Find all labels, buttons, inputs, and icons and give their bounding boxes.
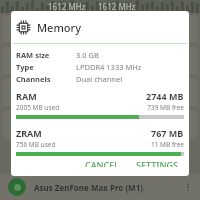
button[interactable] <box>3 111 197 139</box>
staticText: LPDDR4 1333 MHz <box>76 62 142 72</box>
staticText: 1612 MHz <box>98 1 136 12</box>
staticText: Dual channel <box>76 74 123 84</box>
staticText: Asus ZenFone Max Pro (M1) <box>34 182 143 193</box>
button[interactable]: Asus ZenFone Max Pro (M1) <box>0 174 200 200</box>
staticText: 3.0 GB <box>76 50 99 60</box>
staticText: CANCEL <box>85 159 120 167</box>
staticText: 739 MB free <box>147 103 184 112</box>
staticText: SETTINGS <box>136 159 178 167</box>
button[interactable] <box>3 15 197 43</box>
staticText: 11 MB free <box>150 140 184 149</box>
staticText: Memory <box>37 20 82 35</box>
staticText: RAM size <box>16 50 50 60</box>
staticText: 1612 MHz <box>48 1 86 12</box>
button[interactable]: More options <box>180 179 196 195</box>
staticText: Type <box>16 62 34 72</box>
staticText: 2744 MB <box>146 90 184 102</box>
staticText: ZRAM <box>16 127 151 139</box>
staticText: RAM <box>16 90 146 102</box>
button[interactable]: SETTINGS <box>131 156 183 170</box>
button[interactable] <box>3 47 197 75</box>
staticText: 756 MB used <box>16 140 150 149</box>
staticText: Channels <box>16 74 51 84</box>
staticText: 2005 MB used <box>16 103 147 112</box>
button[interactable]: CANCEL <box>80 156 125 170</box>
staticText: 767 MB <box>151 127 184 139</box>
button[interactable] <box>3 79 197 107</box>
